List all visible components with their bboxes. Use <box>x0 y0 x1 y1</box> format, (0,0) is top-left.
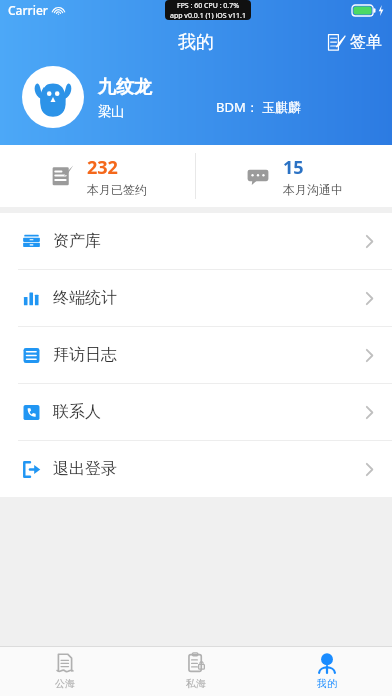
staticText: BDM： 玉麒麟 <box>216 98 302 116</box>
staticText: 九纹龙 <box>98 76 152 99</box>
staticText: 232 <box>87 155 118 180</box>
staticText: 本月已签约 <box>87 182 147 197</box>
staticText: 我的 <box>317 677 337 690</box>
staticText: app v0.0.1 (1) iOS v11.1 <box>170 11 246 19</box>
button[interactable]: 15 <box>196 145 392 207</box>
staticText: 资产库 <box>53 231 101 251</box>
staticText: 我的 <box>178 31 214 54</box>
button[interactable]: 联系人 <box>0 384 392 440</box>
button[interactable]: 公海 <box>0 646 130 696</box>
staticText: 公海 <box>55 677 75 690</box>
button[interactable]: 我的 <box>261 646 392 696</box>
button[interactable]: 退出登录 <box>0 441 392 497</box>
button[interactable]: Avatar <box>22 66 84 128</box>
staticText: 梁山 <box>98 103 124 119</box>
button[interactable]: 私海 <box>130 646 261 696</box>
staticText: 终端统计 <box>53 288 117 308</box>
staticText: 私海 <box>186 677 206 690</box>
staticText: 签单 <box>350 32 382 52</box>
staticText: 拜访日志 <box>53 345 117 365</box>
button[interactable]: 拜访日志 <box>0 327 392 383</box>
button[interactable]: 终端统计 <box>0 270 392 326</box>
button[interactable]: 签单 <box>317 26 392 58</box>
staticText: FPS : 60 CPU : 0.7% <box>177 1 240 11</box>
button[interactable]: 232 <box>0 145 195 207</box>
staticText: 联系人 <box>53 402 101 422</box>
staticText: 退出登录 <box>53 459 117 479</box>
button[interactable]: 资产库 <box>0 213 392 269</box>
staticText: 本月沟通中 <box>283 182 343 197</box>
staticText: 15 <box>283 155 304 180</box>
staticText: Carrier <box>8 2 48 18</box>
